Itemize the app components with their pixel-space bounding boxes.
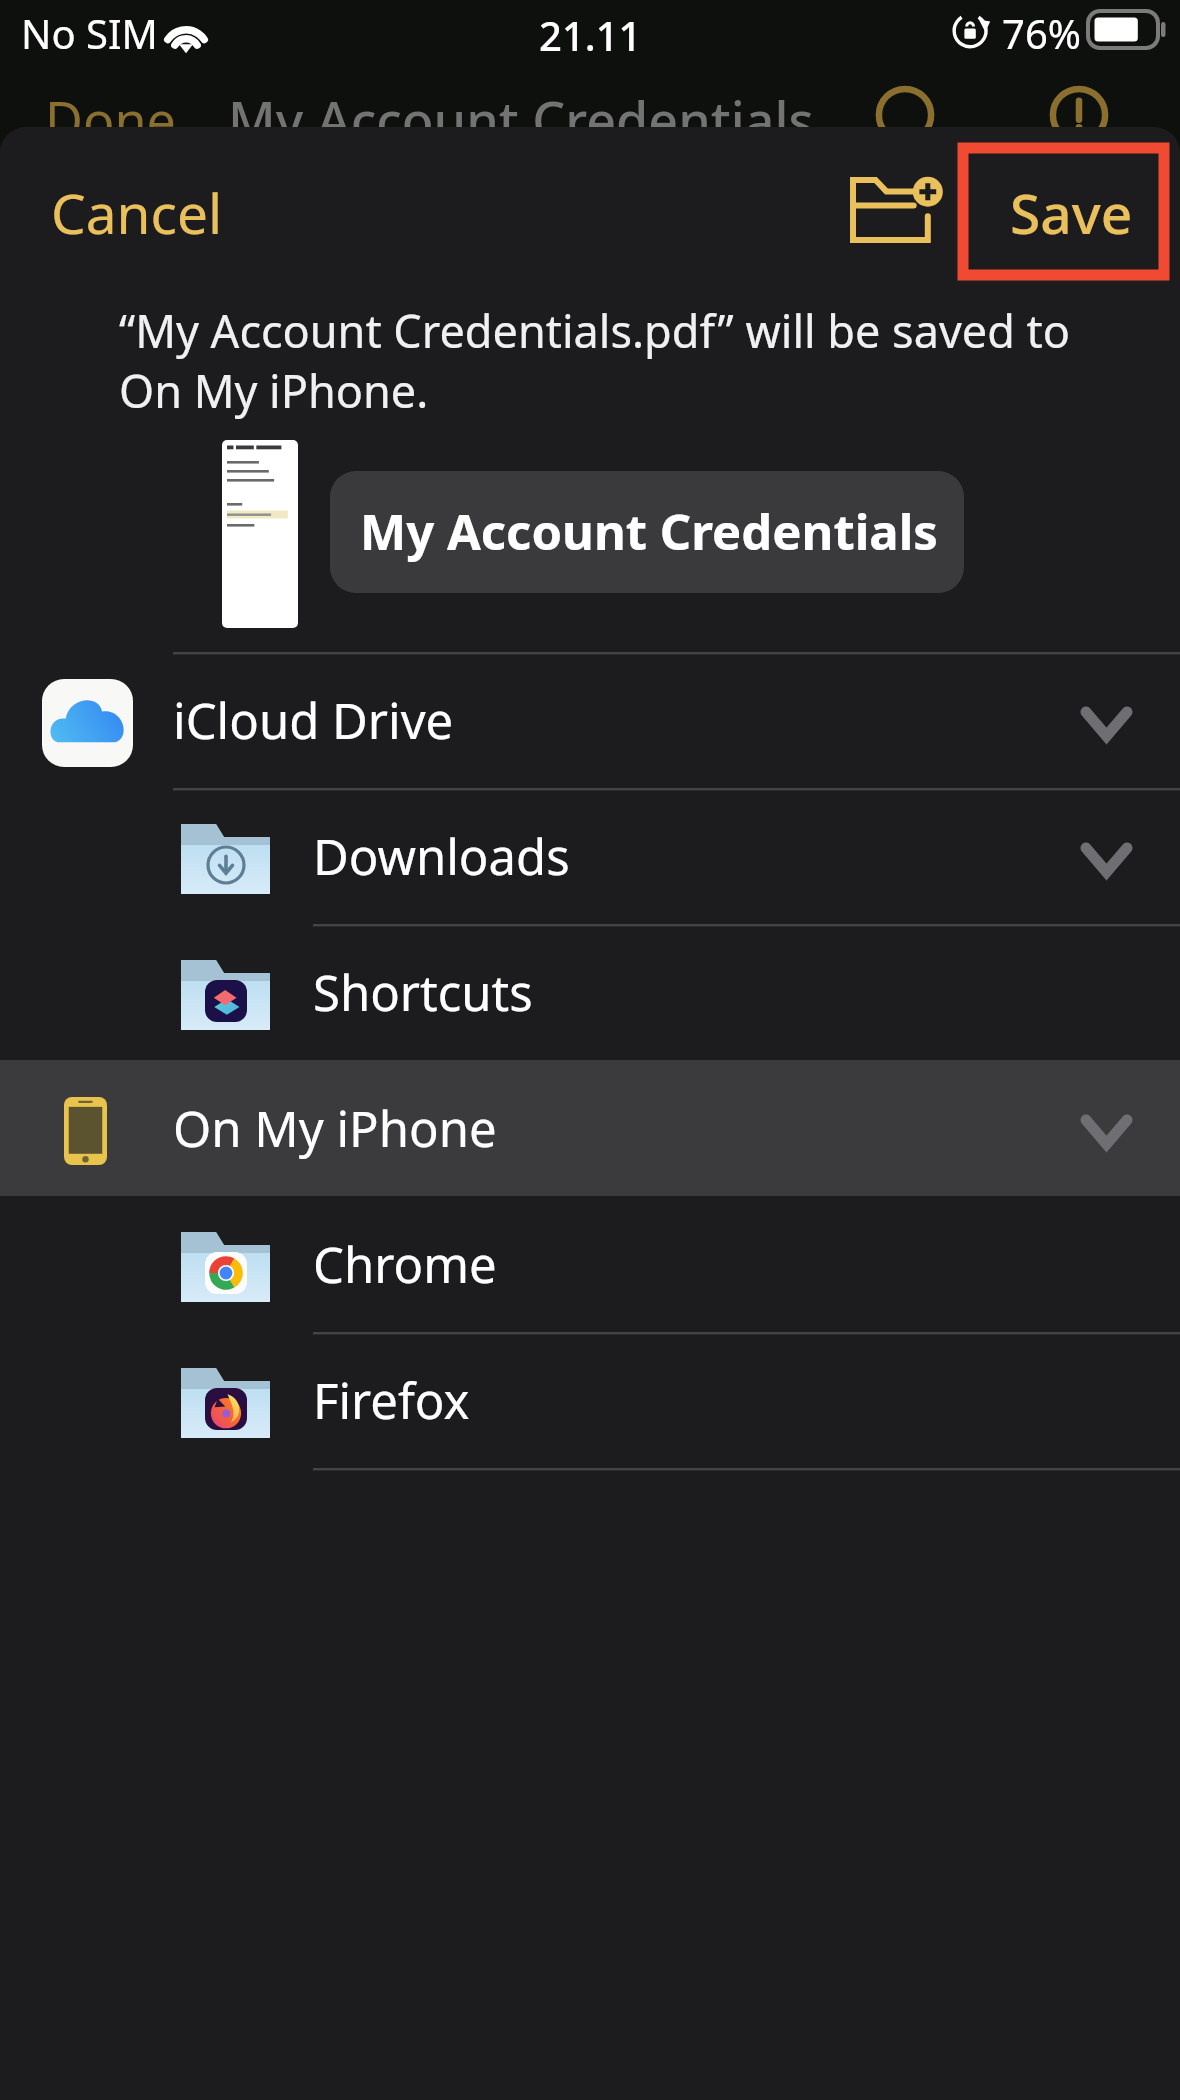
button[interactable]: iCloud Drive bbox=[0, 652, 1180, 788]
button[interactable]: Save bbox=[994, 160, 1146, 256]
staticText: My Account Credentials bbox=[360, 498, 938, 565]
button[interactable]: My Account Credentials bbox=[330, 471, 964, 593]
button[interactable]: Cancel bbox=[40, 160, 230, 256]
staticText: 76% bbox=[1002, 6, 1081, 60]
staticText: Done bbox=[45, 84, 176, 155]
button[interactable]: Firefox bbox=[0, 1332, 1180, 1468]
staticText: Cancel bbox=[51, 175, 223, 250]
staticText: “My Account Credentials.pdf” will be sav… bbox=[119, 300, 1070, 421]
button[interactable]: New Folder bbox=[840, 159, 950, 259]
staticText: No SIM bbox=[21, 6, 158, 60]
staticText: Save bbox=[1010, 175, 1133, 250]
staticText: My Account Credentials bbox=[228, 84, 814, 155]
staticText: On My iPhone bbox=[173, 1095, 497, 1162]
staticText: 21.11 bbox=[539, 8, 642, 62]
button[interactable]: Downloads bbox=[0, 788, 1180, 924]
staticText: Shortcuts bbox=[313, 959, 533, 1026]
staticText: Downloads bbox=[313, 823, 570, 890]
button[interactable]: On My iPhone bbox=[0, 1060, 1180, 1196]
staticText: iCloud Drive bbox=[173, 687, 454, 754]
button[interactable]: Shortcuts bbox=[0, 924, 1180, 1060]
button[interactable]: Chrome bbox=[0, 1196, 1180, 1332]
staticText: Chrome bbox=[313, 1231, 497, 1298]
staticText: Firefox bbox=[313, 1367, 470, 1434]
